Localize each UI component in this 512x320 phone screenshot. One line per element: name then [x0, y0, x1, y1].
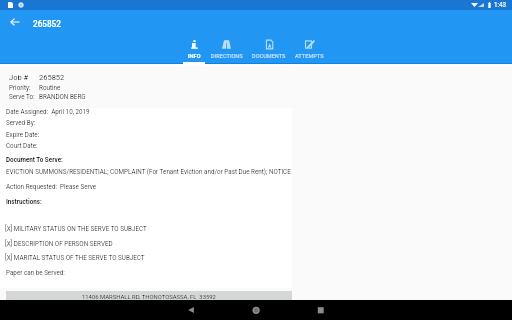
staticText: DIRECTIONS	[211, 53, 243, 60]
staticText: DOCUMENTS	[252, 53, 286, 60]
staticText: Serve To:	[9, 93, 35, 100]
button[interactable]: Back	[5, 12, 25, 32]
staticText: Document To Serve:	[6, 156, 63, 163]
staticText: Expire Date:	[6, 131, 40, 138]
staticText: EVICTION SUMMONS/RESIDENTIAL; COMPLAINT …	[6, 168, 291, 175]
button[interactable]: DOCUMENTS	[248, 10, 290, 64]
staticText: BRANDON BERG	[39, 93, 86, 100]
button[interactable]: INFO	[183, 10, 205, 64]
staticText: [X] MARITAL STATUS OF THE SERVE TO SUBJE…	[5, 254, 145, 261]
button[interactable]: ATTEMPTS	[290, 10, 328, 64]
staticText: Date Assigned: April 10, 2019	[6, 108, 90, 115]
staticText: Instructions:	[6, 198, 42, 205]
button[interactable]: DIRECTIONS	[205, 10, 248, 64]
staticText: Paper can be Served:	[6, 269, 65, 276]
staticText: Priority:	[9, 84, 31, 91]
staticText: Action Requested: Please Serve	[6, 183, 97, 190]
staticText: 265852	[33, 19, 61, 29]
staticText: Court Date:	[6, 142, 38, 149]
staticText: INFO	[188, 53, 201, 60]
staticText: 265852	[39, 73, 65, 82]
staticText: ATTEMPTS	[295, 53, 324, 60]
staticText: Routine	[39, 84, 61, 91]
staticText: 11406 MARSHALL RD, THONOTOSASSA, FL 3359…	[82, 294, 216, 301]
staticText: 1:43	[494, 1, 507, 8]
staticText: [X] MILITARY STATUS ON THE SERVE TO SUBJ…	[5, 225, 147, 232]
staticText: Job #	[9, 73, 29, 82]
staticText: Served By:	[6, 119, 36, 126]
staticText: [X] DESCRIPTION OF PERSON SERVED	[5, 240, 113, 247]
